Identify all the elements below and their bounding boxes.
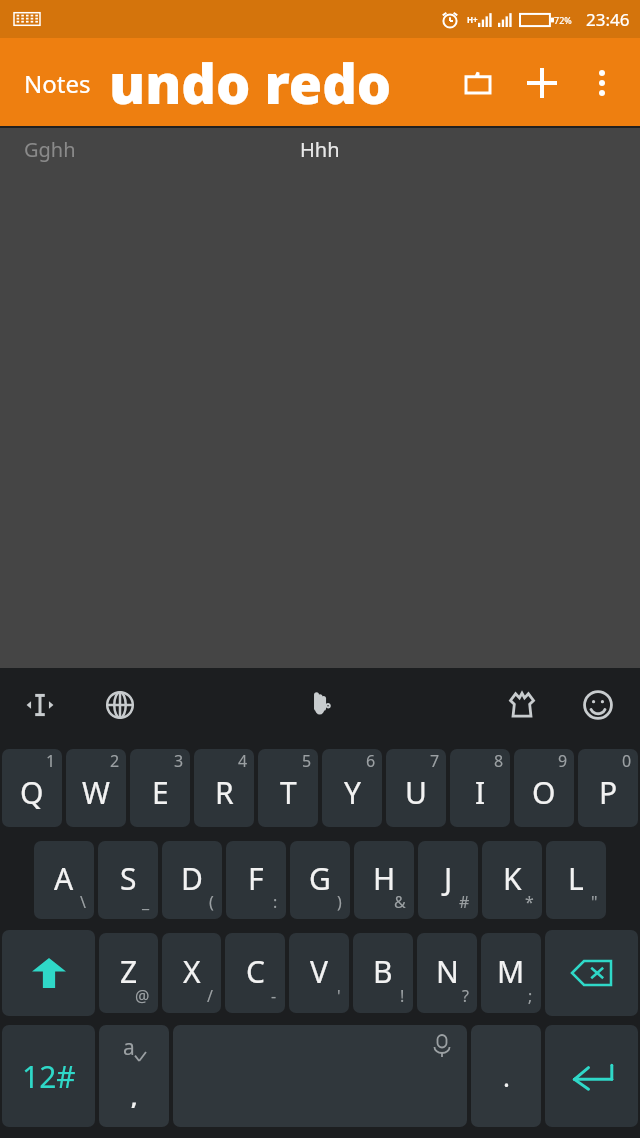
staticText: I (475, 772, 486, 813)
staticText: H+ (467, 14, 478, 25)
button[interactable]: O (514, 749, 574, 827)
staticText: 4 (238, 750, 248, 772)
staticText: E (152, 772, 169, 813)
button[interactable]: D (162, 841, 222, 919)
staticText: @ (135, 985, 150, 1007)
staticText: 7 (430, 750, 440, 772)
button[interactable]: Z (99, 933, 158, 1013)
button[interactable]: J (418, 841, 478, 919)
staticText: 72% (554, 14, 572, 26)
button[interactable]: Space (173, 1025, 467, 1127)
staticText: 23:46 (586, 8, 630, 31)
staticText: H (373, 858, 396, 899)
staticText: Q (20, 772, 44, 813)
button[interactable]: N (417, 933, 477, 1013)
staticText: U (405, 772, 427, 813)
staticText: K (503, 858, 522, 899)
staticText: * (525, 891, 534, 913)
staticText: undo redo (109, 46, 392, 120)
button[interactable]: X (162, 933, 221, 1013)
staticText: 12# (22, 1056, 76, 1097)
staticText: # (459, 891, 470, 913)
button[interactable]: Backspace (545, 930, 638, 1016)
button[interactable]: Enter (545, 1025, 638, 1127)
button[interactable]: Language (92, 677, 148, 733)
staticText: ) (337, 891, 342, 913)
button[interactable]: Theme (494, 677, 550, 733)
staticText: 3 (174, 750, 184, 772)
staticText: W (82, 772, 110, 813)
staticText: C (246, 951, 265, 992)
staticText: ? (462, 985, 469, 1007)
staticText: _ (142, 891, 150, 913)
button[interactable]: M (481, 933, 541, 1013)
button[interactable]: W (66, 749, 126, 827)
button[interactable]: Shift (2, 930, 95, 1016)
staticText: P (599, 772, 618, 813)
staticText: Notes (24, 67, 91, 100)
button[interactable]: 12# (2, 1025, 95, 1127)
button[interactable]: H (354, 841, 414, 919)
staticText: Hhh (300, 136, 340, 163)
button[interactable]: Y (322, 749, 382, 827)
button[interactable]: C (225, 933, 285, 1013)
staticText: M (497, 951, 525, 992)
button[interactable]: K (482, 841, 542, 919)
staticText: 9 (558, 750, 568, 772)
staticText: G (309, 858, 331, 899)
staticText: D (181, 858, 203, 899)
staticText: 6 (366, 750, 376, 772)
staticText: ; (528, 985, 533, 1007)
staticText: 0 (622, 750, 632, 772)
button[interactable]: Q (2, 749, 62, 827)
button[interactable]: I (450, 749, 510, 827)
staticText: A (54, 858, 74, 899)
button[interactable]: G (290, 841, 350, 919)
staticText: V (310, 951, 328, 992)
staticText: J (444, 858, 453, 899)
button[interactable]: S (98, 841, 158, 919)
button[interactable]: E (130, 749, 190, 827)
button[interactable]: B (353, 933, 413, 1013)
staticText: T (280, 772, 297, 813)
staticText: \ (80, 891, 86, 913)
staticText: N (436, 951, 459, 992)
button[interactable]: Emoji (570, 677, 626, 733)
button[interactable]: T (258, 749, 318, 827)
button[interactable]: L (546, 841, 606, 919)
button[interactable]: U (386, 749, 446, 827)
staticText: R (215, 772, 234, 813)
button[interactable]: A (34, 841, 94, 919)
button[interactable]: R (194, 749, 254, 827)
staticText: 2 (110, 750, 120, 772)
staticText: . (503, 1059, 510, 1094)
staticText: ! (400, 985, 405, 1007)
button[interactable]: a (99, 1025, 169, 1127)
staticText: ' (337, 985, 341, 1007)
button[interactable]: V (289, 933, 349, 1013)
button[interactable]: P (578, 749, 638, 827)
button[interactable]: undo redo (109, 46, 392, 120)
staticText: 5 (302, 750, 312, 772)
staticText: 8 (494, 750, 504, 772)
staticText: Z (120, 951, 138, 992)
staticText: B (373, 951, 393, 992)
staticText: Gghh (24, 136, 76, 163)
staticText: : (273, 891, 278, 913)
staticText: F (248, 858, 264, 899)
staticText: X (183, 951, 201, 992)
button[interactable]: Folder (452, 57, 504, 109)
button[interactable]: Add (516, 57, 568, 109)
staticText: L (568, 858, 584, 899)
button[interactable]: Cursor (12, 677, 68, 733)
staticText: " (591, 891, 598, 913)
button[interactable]: . (471, 1025, 541, 1127)
button[interactable]: F (226, 841, 286, 919)
staticText: ( (209, 891, 214, 913)
staticText: - (271, 985, 277, 1007)
button[interactable]: More options (576, 57, 628, 109)
button[interactable]: Gesture (293, 677, 349, 733)
staticText: / (207, 985, 213, 1007)
staticText: , (131, 1081, 138, 1111)
staticText: Y (344, 772, 361, 813)
